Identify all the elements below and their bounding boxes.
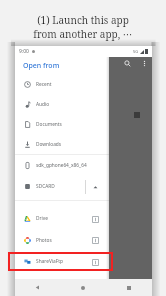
button[interactable]: SDCARD <box>15 176 152 197</box>
staticText: 9:00 <box>19 48 29 55</box>
staticText: Recent <box>36 81 52 88</box>
button[interactable]: Downloads <box>15 134 152 154</box>
staticText: SDCARD <box>36 183 55 190</box>
button[interactable]: Photos <box>15 229 152 251</box>
staticText: Photos <box>36 237 52 244</box>
button[interactable]: Recents <box>106 279 152 296</box>
button[interactable]: Home <box>60 279 106 296</box>
button[interactable]: Drive <box>15 208 152 229</box>
staticText: 5G <box>133 49 139 54</box>
staticText: Audio <box>36 101 50 108</box>
button[interactable]: Audio <box>15 94 152 114</box>
staticText: sdk_gphone64_x86_64 <box>36 162 87 169</box>
staticText: Open from <box>23 61 60 71</box>
button[interactable]: Back <box>15 279 60 296</box>
other: More options <box>141 60 148 67</box>
button[interactable]: Recent <box>15 74 152 94</box>
other: Back <box>35 285 40 290</box>
button[interactable]: sdk_gphone64_x86_64 <box>15 155 152 176</box>
other: Home <box>81 286 85 290</box>
button[interactable]: ShareViaFtp <box>15 251 152 272</box>
staticText: Downloads <box>36 141 62 148</box>
staticText: (1) Launch this app from another app, ⋯ <box>33 13 133 41</box>
staticText: Drive <box>36 215 48 222</box>
staticText: Documents <box>36 121 62 128</box>
staticText: ShareViaFtp <box>36 258 63 265</box>
other: Search <box>124 60 131 67</box>
button[interactable]: Documents <box>15 114 152 134</box>
